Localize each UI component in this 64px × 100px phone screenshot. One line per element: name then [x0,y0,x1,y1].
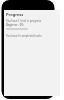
staticText: You have 0 completed levels [6,34,42,38]
staticText: Progress [6,12,24,17]
staticText: Beginner - 0% [6,23,24,27]
staticText: You have 1 level in progress [6,19,41,23]
